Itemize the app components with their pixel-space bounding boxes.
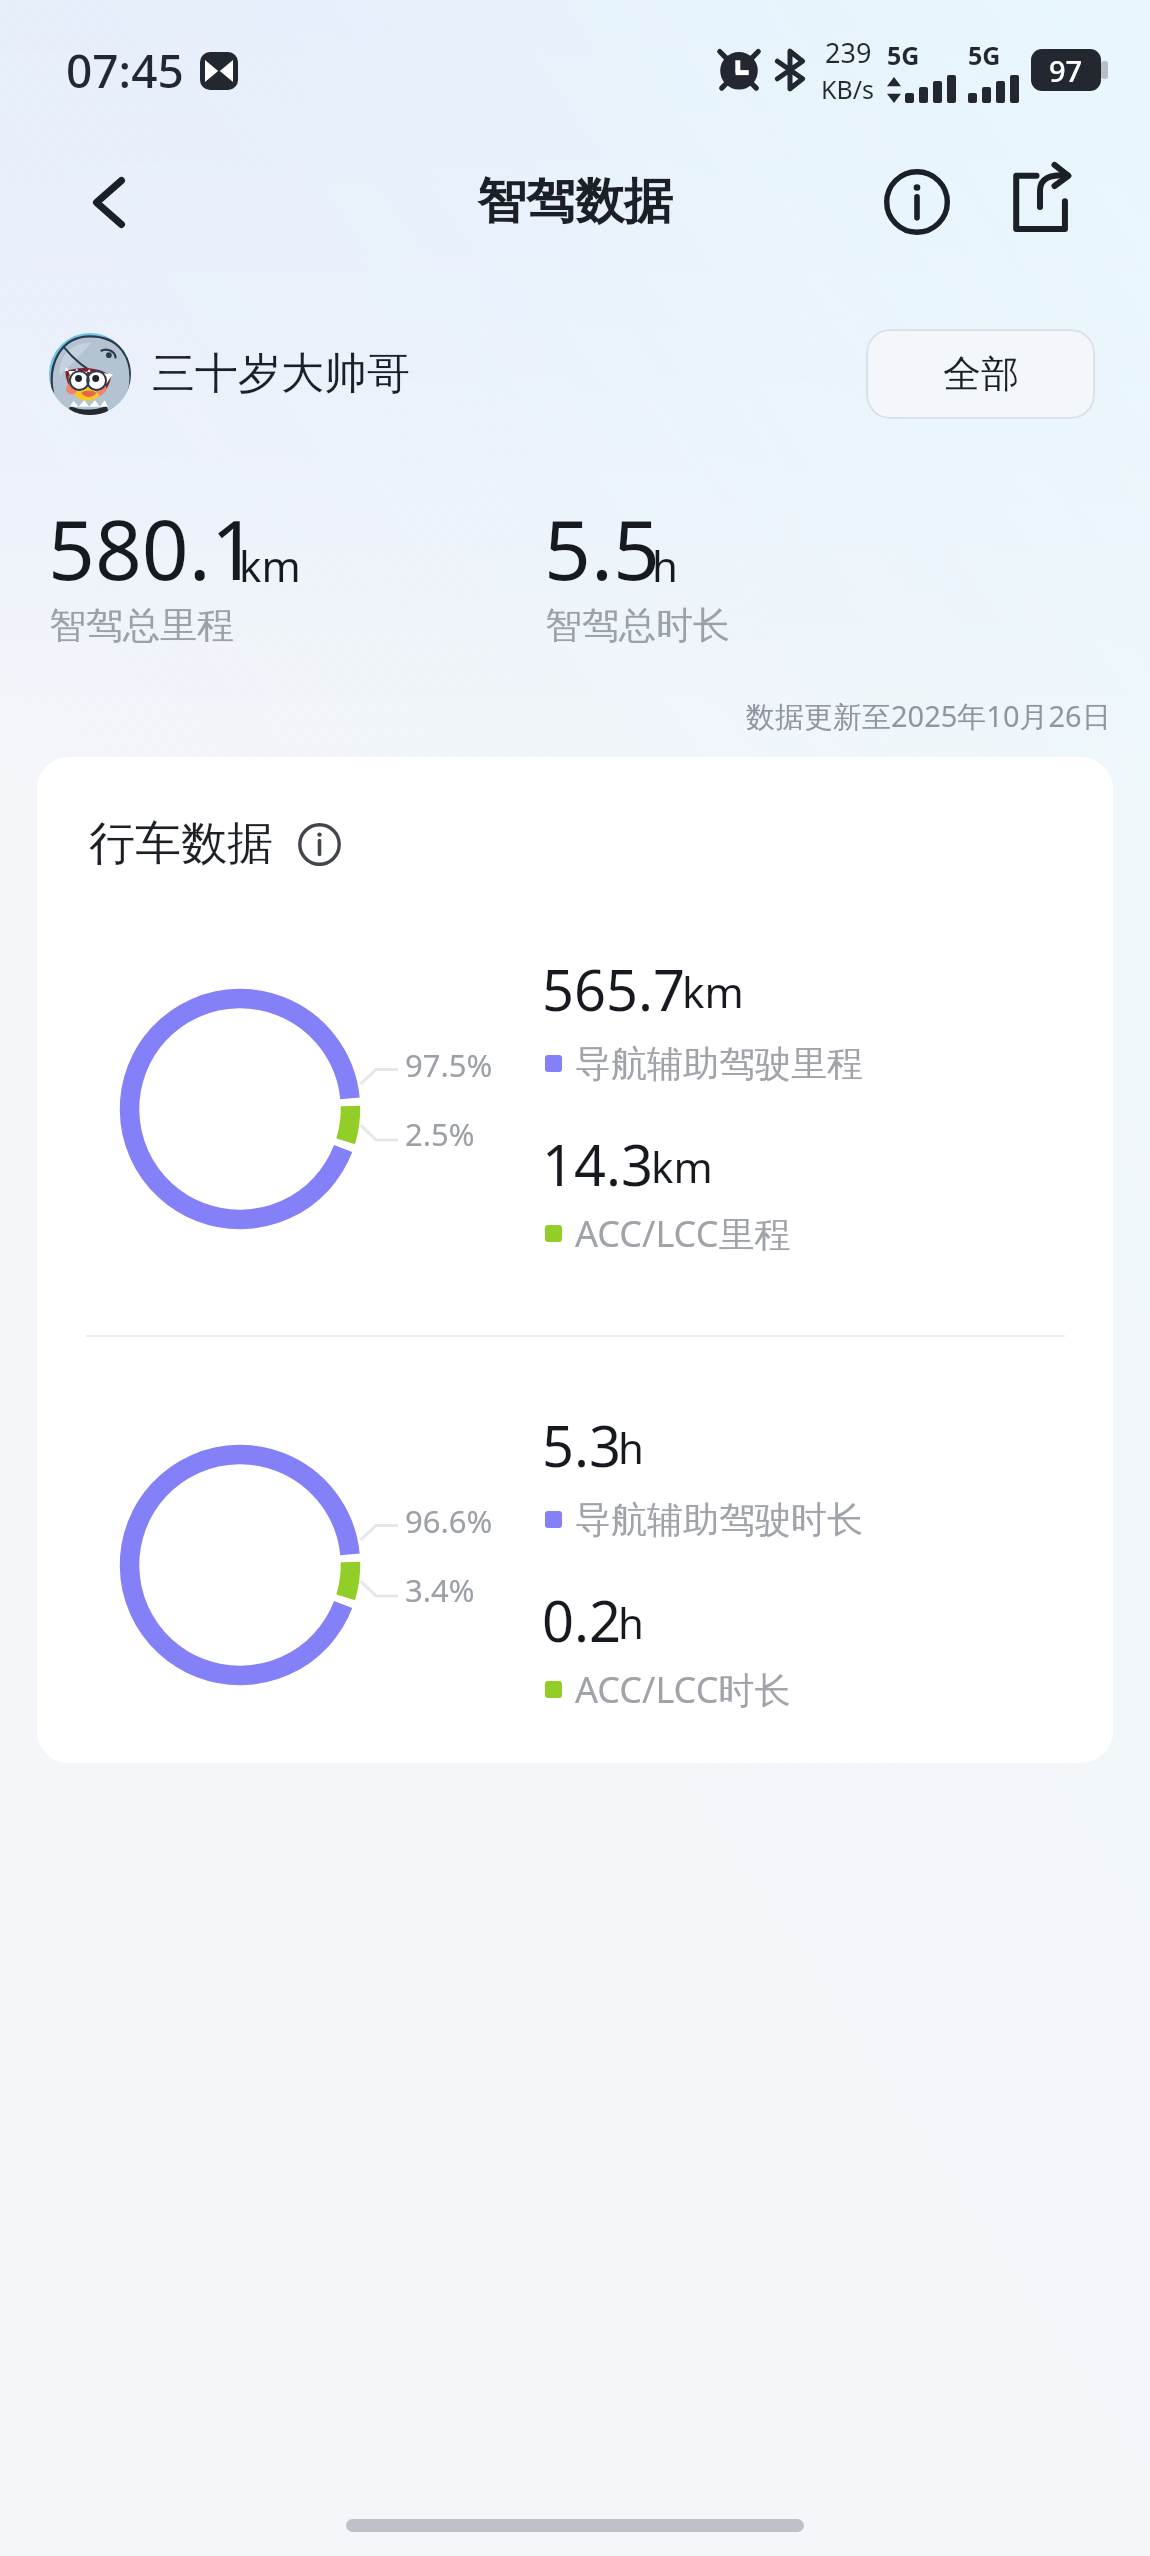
staticText: 580.1 [48, 492, 258, 604]
button[interactable]: 全部 [866, 329, 1095, 419]
staticText: 97.5% [405, 1044, 493, 1086]
staticText: h [618, 1594, 644, 1651]
staticText: km [651, 1138, 713, 1195]
staticText: 智驾数据 [477, 171, 673, 233]
staticText: 96.6% [405, 1500, 493, 1542]
staticText: 5G [887, 38, 920, 72]
staticText: 5.5 [544, 492, 660, 604]
staticText: h [618, 1419, 644, 1476]
staticText: 三十岁大帅哥 [152, 347, 410, 401]
staticText: 2.5% [405, 1113, 475, 1155]
staticText: ACC/LCC时长 [575, 1665, 791, 1714]
button[interactable]: About driving data [298, 823, 341, 866]
staticText: 5G [968, 38, 1001, 72]
button[interactable]: Info [866, 151, 968, 253]
staticText: 5.3 [542, 1407, 622, 1483]
button[interactable]: Back [59, 152, 159, 252]
staticText: km [239, 537, 301, 594]
staticText: 智驾总时长 [545, 602, 730, 649]
staticText: 全部 [943, 350, 1019, 398]
staticText: 07:45 [66, 39, 184, 102]
staticText: 智驾总里程 [49, 602, 234, 649]
staticText: 数据更新至2025年10月26日 [746, 696, 1111, 736]
staticText: ACC/LCC里程 [575, 1209, 791, 1258]
staticText: 3.4% [405, 1569, 475, 1611]
staticText: 行车数据 [89, 815, 273, 873]
staticText: h [652, 537, 678, 594]
staticText: km [682, 963, 744, 1020]
staticText: 导航辅助驾驶里程 [575, 1041, 863, 1086]
staticText: 导航辅助驾驶时长 [575, 1497, 863, 1542]
staticText: 0.2 [542, 1582, 622, 1658]
staticText: 97 [1049, 51, 1083, 90]
staticText: 14.3 [542, 1126, 654, 1202]
staticText: 565.7 [542, 951, 686, 1027]
staticText: KB/s [821, 72, 875, 106]
staticText: 239 [825, 34, 872, 71]
button[interactable]: Share [989, 151, 1091, 253]
